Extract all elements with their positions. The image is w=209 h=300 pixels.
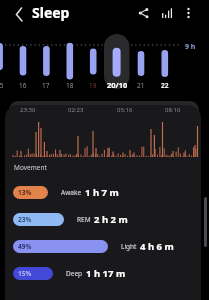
staticText: 15% <box>18 269 32 278</box>
staticText: 19 <box>89 81 97 90</box>
staticText: 23% <box>18 215 32 224</box>
staticText: 22 <box>161 81 169 90</box>
button[interactable] <box>136 3 154 23</box>
staticText: 16 <box>19 81 27 90</box>
staticText: 08:10 <box>165 106 181 114</box>
staticText: 02:23 <box>68 106 84 114</box>
button[interactable]: 22 <box>150 80 180 90</box>
button[interactable]: 21 <box>126 80 156 90</box>
staticText: 21 <box>137 81 145 90</box>
button[interactable]: 13% <box>13 186 119 199</box>
staticText: Deep <box>66 269 83 278</box>
staticText: 1 h 17 m <box>86 267 126 280</box>
staticText: Light <box>121 242 137 251</box>
staticText: 9 h <box>185 42 196 52</box>
staticText: 13% <box>18 188 32 197</box>
staticText: 20/10 <box>107 80 128 90</box>
button[interactable]: 49% <box>13 240 174 253</box>
staticText: 23:30 <box>20 106 36 114</box>
staticText: Sleep <box>32 3 70 22</box>
button[interactable] <box>182 4 196 22</box>
staticText: 15 <box>0 81 4 90</box>
button[interactable]: 18 <box>55 80 85 90</box>
staticText: 1 h 7 m <box>85 186 119 199</box>
staticText: 05:16 <box>117 106 133 114</box>
staticText: 4 h 6 m <box>140 240 174 253</box>
button[interactable]: 19 <box>78 80 108 90</box>
button[interactable] <box>7 4 27 24</box>
button[interactable]: 23% <box>13 213 128 226</box>
staticText: Movement <box>14 163 47 172</box>
staticText: 2 h 2 m <box>94 213 128 226</box>
staticText: REM <box>77 215 91 224</box>
staticText: 18 <box>66 81 74 90</box>
button[interactable]: 17 <box>31 80 61 90</box>
button[interactable]: 20/10 <box>102 80 132 90</box>
button[interactable]: 15% <box>13 267 126 280</box>
staticText: Awake <box>61 188 82 197</box>
button[interactable]: 15 <box>0 80 15 90</box>
button[interactable]: 16 <box>8 80 38 90</box>
button[interactable] <box>159 4 175 22</box>
staticText: 49% <box>18 242 32 251</box>
staticText: 17 <box>42 81 50 90</box>
button[interactable] <box>5 105 201 300</box>
